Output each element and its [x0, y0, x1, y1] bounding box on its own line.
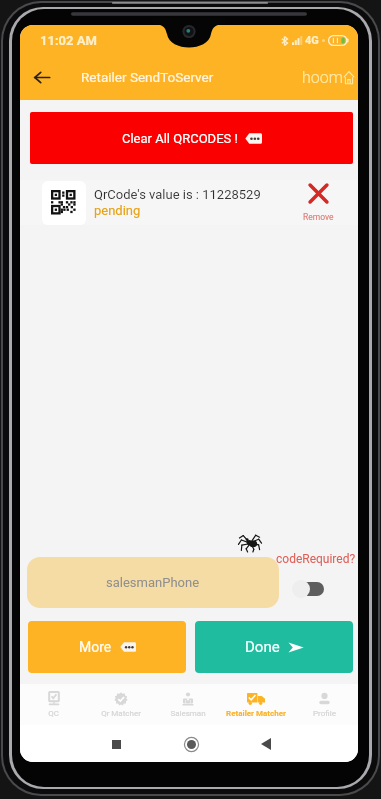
button[interactable]: More	[28, 621, 186, 673]
staticText: codeRequired?	[276, 552, 356, 566]
staticText: Qr Matcher	[101, 709, 141, 718]
button[interactable]: Back	[252, 730, 280, 758]
button[interactable]: Home	[177, 730, 205, 758]
staticText: Done	[245, 638, 280, 656]
button[interactable]: Salesman	[154, 684, 222, 725]
staticText: pending	[94, 203, 141, 218]
staticText: salesmanPhone	[106, 575, 200, 590]
staticText: Clear All QRCODES !	[122, 131, 238, 146]
button[interactable]: Profile	[290, 684, 358, 725]
button[interactable]: salesmanPhone	[27, 557, 279, 608]
button[interactable]: Remove	[297, 180, 352, 225]
staticText: More	[79, 639, 112, 655]
button[interactable]: codeRequired toggle	[292, 580, 324, 598]
button[interactable]: QC	[20, 684, 87, 725]
button[interactable]: Retailer Matcher	[222, 684, 290, 725]
button[interactable]: Qr Matcher	[87, 684, 154, 725]
button[interactable]: Done	[195, 621, 353, 673]
staticText: 11:02 AM	[40, 33, 97, 48]
button[interactable]: Back	[27, 62, 57, 92]
staticText: QrCode's value is : 11228529	[94, 187, 261, 202]
staticText: Remove	[303, 212, 334, 222]
button[interactable]: Clear All QRCODES !	[30, 112, 353, 164]
button[interactable]: QrCode's value is : 11228529	[20, 180, 358, 225]
button[interactable]: Recents	[102, 730, 130, 758]
staticText: Retailer Matcher	[226, 709, 286, 718]
staticText: QC	[48, 709, 59, 718]
staticText: hoom	[302, 68, 343, 87]
staticText: 4G	[305, 34, 319, 47]
staticText: Retailer SendToServer	[81, 69, 214, 85]
staticText: Salesman	[170, 709, 206, 718]
staticText: Profile	[313, 709, 336, 718]
